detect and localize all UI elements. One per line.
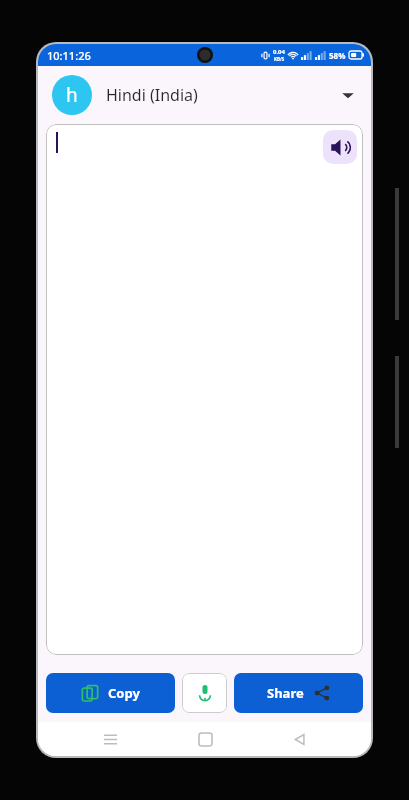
staticText: Share bbox=[267, 684, 304, 702]
staticText: 10:11:26 bbox=[47, 48, 91, 63]
staticText: Copy bbox=[108, 684, 140, 702]
button[interactable]: Recent apps bbox=[88, 722, 132, 756]
staticText: 58% bbox=[329, 50, 346, 61]
staticText: KB/S bbox=[274, 56, 285, 62]
staticText: Hindi (India) bbox=[106, 84, 339, 106]
button[interactable]: h bbox=[38, 66, 371, 123]
button[interactable]: Voice input bbox=[182, 673, 227, 713]
button[interactable]: Copy bbox=[46, 673, 175, 713]
staticText: h bbox=[66, 82, 78, 108]
button[interactable]: Back bbox=[277, 722, 321, 756]
other: Choose language bbox=[339, 86, 357, 104]
button[interactable]: Speak bbox=[323, 130, 357, 164]
button[interactable]: Share bbox=[234, 673, 363, 713]
button[interactable]: Home bbox=[183, 722, 227, 756]
staticText: 0.04 bbox=[273, 48, 285, 56]
button[interactable]: Speak bbox=[46, 124, 363, 655]
